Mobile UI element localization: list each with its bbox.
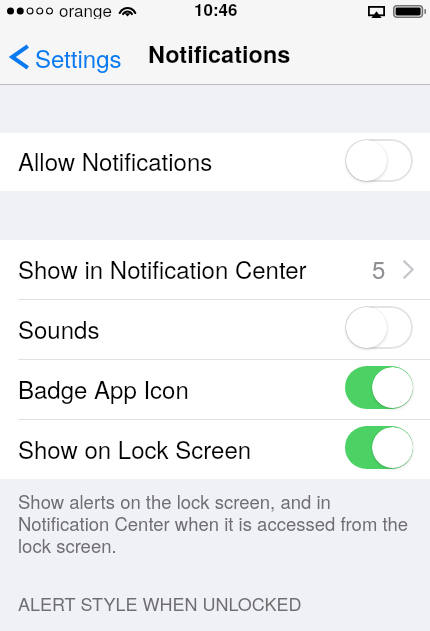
button[interactable]: Allow Notifications off: [345, 139, 413, 182]
button[interactable]: Show in Notification Center: [0, 240, 430, 299]
staticText: Show alerts on the lock screen, and in N…: [18, 488, 413, 558]
staticText: Settings: [35, 40, 122, 74]
button[interactable]: Badge App Icon: [0, 360, 430, 419]
button[interactable]: Show on Lock Screen on: [345, 426, 413, 469]
staticText: Badge App Icon: [18, 371, 189, 405]
button[interactable]: Sounds: [0, 300, 430, 359]
staticText: Allow Notifications: [18, 143, 213, 177]
button[interactable]: Show on Lock Screen: [0, 420, 430, 479]
other: Battery full: [393, 5, 426, 18]
staticText: 5: [372, 251, 386, 285]
staticText: Sounds: [18, 311, 100, 345]
staticText: ALERT STYLE WHEN UNLOCKED: [18, 590, 302, 616]
staticText: Notifications: [148, 37, 291, 71]
staticText: orange: [59, 0, 112, 19]
staticText: 10:46: [194, 0, 238, 19]
other: Wi-Fi: [119, 2, 136, 15]
other: Back to Settings: [10, 44, 30, 70]
staticText: Show on Lock Screen: [18, 431, 252, 465]
button[interactable]: Allow Notifications: [0, 133, 430, 191]
button[interactable]: Sounds off: [345, 306, 413, 349]
other: AirPlay: [368, 6, 385, 18]
staticText: Show in Notification Center: [18, 251, 307, 285]
button[interactable]: Back to Settings: [0, 36, 132, 78]
button[interactable]: Badge App Icon on: [345, 366, 413, 409]
